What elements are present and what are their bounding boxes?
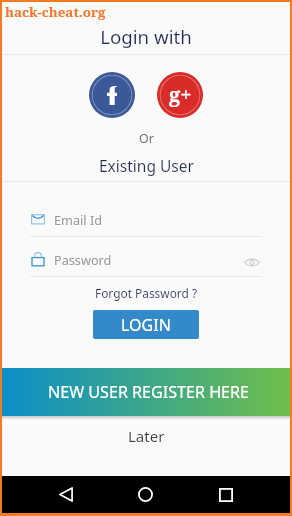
- staticText: NEW USER REGISTER HERE: [48, 381, 249, 403]
- staticText: Password: [54, 251, 112, 268]
- button[interactable]: Home: [123, 476, 167, 513]
- button[interactable]: LOGIN: [93, 310, 199, 339]
- staticText: Or: [139, 130, 154, 147]
- button[interactable]: Recent apps: [204, 476, 248, 513]
- button[interactable]: NEW USER REGISTER HERE: [2, 368, 290, 416]
- button[interactable]: Sign in with Google Plus: [157, 72, 203, 118]
- staticText: Email Id: [54, 211, 102, 228]
- staticText: g+: [169, 81, 192, 108]
- button[interactable]: Sign in with Facebook: [89, 72, 135, 118]
- staticText: hack-cheat.org: [5, 3, 106, 21]
- button[interactable]: Later: [128, 426, 165, 446]
- staticText: LOGIN: [121, 314, 171, 336]
- staticText: Existing User: [99, 155, 194, 176]
- button[interactable]: Back: [44, 476, 88, 513]
- button[interactable]: Show password: [242, 252, 262, 272]
- button[interactable]: Forgot Password ?: [95, 285, 198, 301]
- staticText: Login with: [100, 24, 192, 49]
